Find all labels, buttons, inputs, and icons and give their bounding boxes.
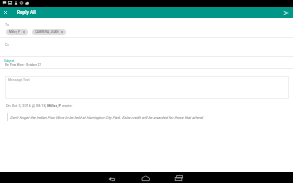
staticText: Message Text: [8, 78, 30, 82]
button[interactable]: Close: [1, 8, 10, 17]
button[interactable]: Home: [141, 172, 152, 183]
staticText: Cc: [5, 43, 10, 47]
button[interactable]: Send: [281, 8, 291, 18]
staticText: On Oct 3, 2016 @ 08:18, Miller, P wrote:: [6, 103, 73, 107]
staticText: Subject: [4, 59, 15, 63]
staticText: Miller, P: [9, 30, 21, 34]
button[interactable]: Miller, P: [6, 29, 28, 35]
staticText: Don't forget the Indian Pow Wow to be he…: [10, 115, 204, 120]
button[interactable]: CABRERA, JUAN: [32, 29, 66, 35]
staticText: Re: Pow Wow - October 21: [5, 63, 42, 67]
button[interactable]: Back: [107, 172, 118, 183]
button[interactable]: Recents: [174, 172, 185, 183]
staticText: To: [5, 23, 9, 27]
staticText: Reply All: [17, 10, 36, 16]
button[interactable]: Message Text: [5, 76, 289, 99]
staticText: CABRERA, JUAN: [35, 30, 59, 34]
